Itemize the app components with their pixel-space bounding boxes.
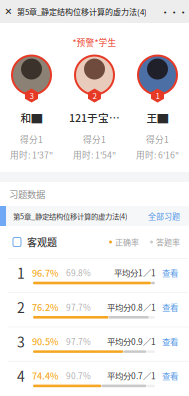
staticText: 客观题 <box>27 235 57 249</box>
staticText: 4 <box>17 365 25 386</box>
staticText: 69.8% <box>66 267 91 279</box>
staticText: 得分1 <box>146 133 169 145</box>
button[interactable]: More <box>159 0 189 23</box>
staticText: 查看 <box>162 369 178 382</box>
button[interactable]: 1 <box>0 258 189 292</box>
staticText: 查看 <box>162 267 178 279</box>
button[interactable]: 3 <box>0 54 63 161</box>
staticText: 90.5% <box>32 335 59 348</box>
staticText: 用时: 1'37" <box>10 148 53 161</box>
staticText: 90.7% <box>66 369 91 382</box>
staticText: 和▇ <box>20 109 42 125</box>
staticText: 第5章_静定结构位移计算的虚力法(4) <box>13 211 127 221</box>
staticText: 查看 <box>162 335 178 347</box>
staticText: ✕ <box>4 6 12 17</box>
staticText: 用时: 1'54" <box>73 148 116 161</box>
staticText: 96.7% <box>32 266 59 279</box>
staticText: 74.4% <box>32 369 59 382</box>
staticText: 76.2% <box>32 300 59 313</box>
staticText: 王▇ <box>146 109 168 125</box>
staticText: 平均分0.7／1 <box>107 369 156 382</box>
staticText: 2 <box>17 297 25 317</box>
staticText: 用时: 6'16" <box>136 148 179 161</box>
button[interactable]: 3 <box>0 327 189 361</box>
button[interactable]: 2 <box>0 292 189 327</box>
button[interactable]: Close <box>0 0 17 23</box>
button[interactable]: 1 <box>126 54 189 161</box>
staticText: 2 <box>92 90 96 101</box>
staticText: 97.7% <box>66 301 91 313</box>
staticText: *预警*学生 <box>72 36 116 48</box>
button[interactable]: 4 <box>0 361 189 395</box>
staticText: 第5章_静定结构位移计算的虚力法(4) <box>17 6 147 17</box>
staticText: 97.7% <box>66 335 91 347</box>
staticText: 习题数据 <box>9 187 45 201</box>
staticText: 查看 <box>162 301 178 313</box>
staticText: 正确率 <box>115 236 139 248</box>
staticText: ••• <box>160 5 187 18</box>
staticText: 得分1 <box>83 133 106 145</box>
staticText: 全部习题 <box>148 210 180 222</box>
staticText: 平均分0.9／1 <box>107 335 156 347</box>
staticText: 平均分0.8／1 <box>107 301 156 313</box>
staticText: 平均分1／1 <box>114 267 156 279</box>
staticText: 1 <box>155 90 159 101</box>
button[interactable]: 全部习题 <box>148 210 189 222</box>
staticText: 3 <box>17 331 25 351</box>
button[interactable]: 2 <box>63 54 126 161</box>
staticText: 1 <box>17 263 25 283</box>
staticText: 得分1 <box>20 133 43 145</box>
staticText: 答题率 <box>156 236 180 248</box>
staticText: 3 <box>29 90 33 101</box>
staticText: 121于宝… <box>69 109 120 125</box>
